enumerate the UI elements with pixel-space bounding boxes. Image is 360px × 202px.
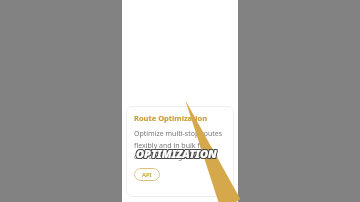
staticText: API [142,171,152,179]
staticText: OPTIMIZATION [136,147,217,162]
staticText: OPTIMIZATION [137,145,218,160]
staticText: OPTIMIZATION [137,147,218,162]
staticText: OPTIMIZATION [136,146,217,161]
staticText: OPTIMIZATION [137,146,218,161]
staticText: Route Optimization [134,113,208,123]
staticText: Optimize multi-stop routes flexibly and … [134,129,223,161]
staticText: OPTIMIZATION [136,145,217,160]
staticText: OPTIMIZATION [135,147,216,162]
button[interactable]: Route Optimization [126,106,234,197]
staticText: OPTIMIZATION [135,145,216,160]
button[interactable]: API [134,168,160,181]
staticText: OPTIMIZATION [135,146,216,161]
